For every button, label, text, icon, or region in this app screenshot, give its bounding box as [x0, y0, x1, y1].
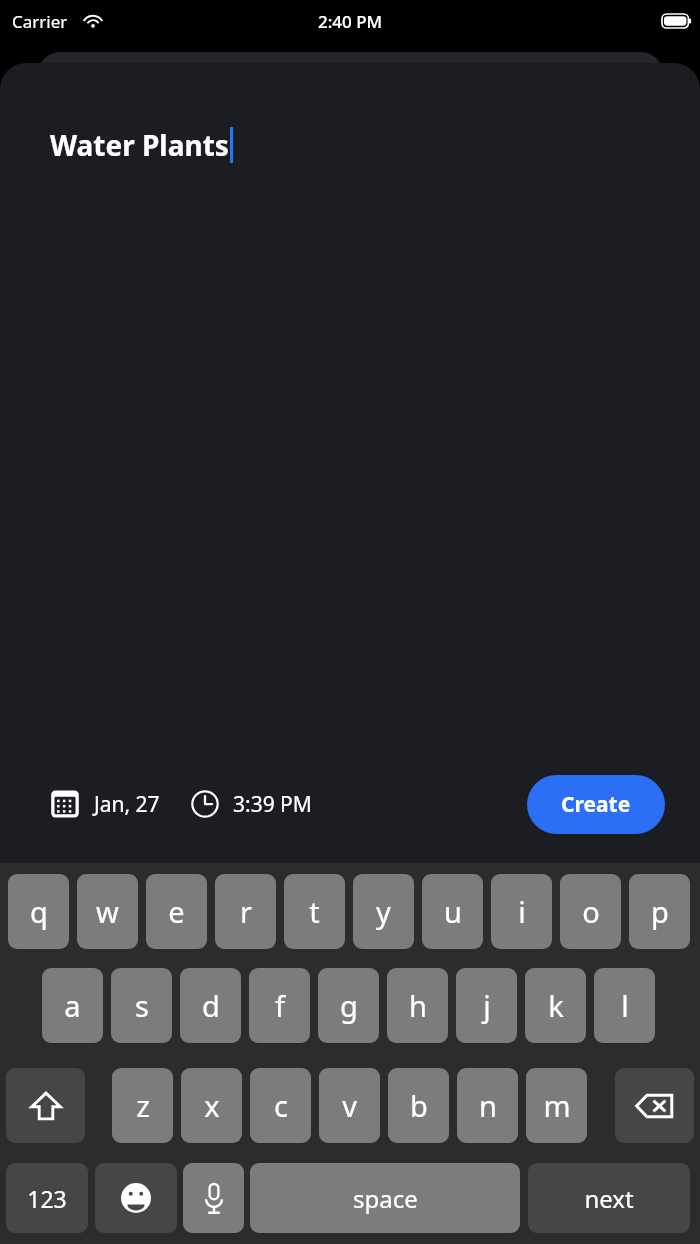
button[interactable]: i: [491, 874, 552, 949]
button[interactable]: a: [42, 968, 103, 1043]
staticText: e: [168, 892, 185, 931]
button[interactable]: space: [250, 1163, 520, 1233]
staticText: o: [582, 892, 600, 931]
staticText: 123: [27, 1183, 67, 1214]
button[interactable]: k: [525, 968, 586, 1043]
staticText: Jan, 27: [94, 790, 160, 819]
button[interactable]: Emoji: [95, 1163, 177, 1233]
staticText: f: [275, 986, 285, 1025]
button[interactable]: p: [629, 874, 690, 949]
staticText: 3:39 PM: [233, 790, 312, 819]
button[interactable]: Create: [527, 775, 665, 834]
staticText: u: [444, 892, 462, 931]
staticText: s: [135, 986, 149, 1025]
button[interactable]: v: [319, 1068, 380, 1143]
staticText: n: [479, 1086, 497, 1125]
button[interactable]: j: [456, 968, 517, 1043]
staticText: z: [136, 1086, 150, 1125]
staticText: j: [483, 986, 491, 1025]
staticText: Water Plants: [50, 126, 229, 164]
button[interactable]: x: [181, 1068, 242, 1143]
staticText: Carrier: [12, 10, 68, 33]
staticText: p: [651, 892, 669, 931]
button[interactable]: f: [249, 968, 310, 1043]
button[interactable]: g: [318, 968, 379, 1043]
button[interactable]: c: [250, 1068, 311, 1143]
staticText: a: [64, 986, 81, 1025]
staticText: space: [353, 1182, 418, 1215]
button[interactable]: Jan, 27: [50, 789, 160, 819]
staticText: c: [274, 1086, 288, 1125]
staticText: l: [621, 986, 629, 1025]
button[interactable]: Shift: [6, 1068, 85, 1143]
staticText: k: [548, 986, 564, 1025]
button[interactable]: b: [388, 1068, 449, 1143]
button[interactable]: u: [422, 874, 483, 949]
staticText: m: [543, 1086, 571, 1125]
staticText: y: [376, 892, 391, 931]
staticText: q: [30, 892, 48, 931]
button[interactable]: next: [528, 1163, 690, 1233]
staticText: v: [342, 1086, 357, 1125]
staticText: h: [409, 986, 427, 1025]
button[interactable]: w: [77, 874, 138, 949]
staticText: w: [96, 892, 119, 931]
button[interactable]: Water Plants: [50, 126, 700, 164]
button[interactable]: q: [8, 874, 69, 949]
staticText: next: [584, 1182, 634, 1215]
button[interactable]: o: [560, 874, 621, 949]
button[interactable]: t: [284, 874, 345, 949]
button[interactable]: 123: [6, 1163, 88, 1233]
button[interactable]: r: [215, 874, 276, 949]
button[interactable]: s: [111, 968, 172, 1043]
button[interactable]: h: [387, 968, 448, 1043]
staticText: 2:40 PM: [318, 10, 383, 33]
button[interactable]: Voice input: [183, 1163, 244, 1233]
button[interactable]: m: [526, 1068, 587, 1143]
staticText: d: [202, 986, 220, 1025]
staticText: t: [309, 892, 320, 931]
staticText: g: [340, 986, 358, 1025]
button[interactable]: e: [146, 874, 207, 949]
button[interactable]: y: [353, 874, 414, 949]
staticText: i: [518, 892, 526, 931]
button[interactable]: l: [594, 968, 655, 1043]
button[interactable]: n: [457, 1068, 518, 1143]
button[interactable]: z: [112, 1068, 173, 1143]
staticText: b: [410, 1086, 428, 1125]
button[interactable]: 3:39 PM: [190, 789, 312, 819]
staticText: Create: [561, 790, 631, 819]
button[interactable]: Backspace: [615, 1068, 694, 1143]
staticText: r: [240, 892, 252, 931]
button[interactable]: d: [180, 968, 241, 1043]
staticText: x: [204, 1086, 220, 1125]
